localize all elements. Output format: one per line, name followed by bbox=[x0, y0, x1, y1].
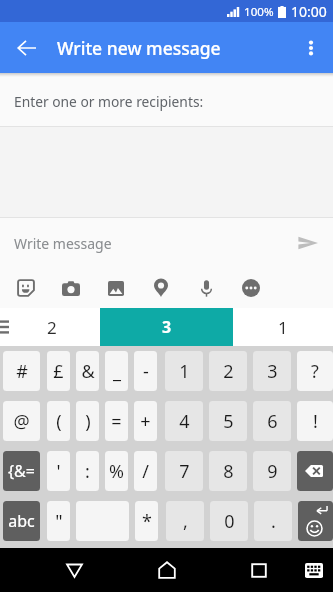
button[interactable]: Image bbox=[107, 279, 125, 297]
button[interactable]: Backspace bbox=[297, 451, 333, 491]
button[interactable]: 2 bbox=[209, 351, 247, 391]
staticText: 9 bbox=[267, 459, 278, 484]
button[interactable]: ) bbox=[76, 401, 99, 441]
staticText: {&= bbox=[8, 460, 35, 482]
staticText: ' bbox=[56, 459, 61, 484]
button[interactable]: ! bbox=[297, 401, 333, 441]
button[interactable]: = bbox=[105, 401, 128, 441]
button[interactable]: _ bbox=[105, 351, 128, 391]
staticText: = bbox=[111, 409, 122, 434]
staticText: * bbox=[142, 509, 152, 534]
staticText: & bbox=[81, 359, 95, 384]
staticText: " bbox=[55, 509, 63, 534]
button[interactable]: Location bbox=[152, 279, 170, 297]
button[interactable]: 4 bbox=[165, 401, 203, 441]
button[interactable]: 9 bbox=[253, 451, 291, 491]
staticText: 0 bbox=[224, 509, 235, 534]
staticText: 10:00 bbox=[291, 2, 327, 21]
button[interactable]: ? bbox=[297, 351, 333, 391]
staticText: ( bbox=[56, 409, 62, 434]
button[interactable]: More options bbox=[289, 26, 333, 70]
button[interactable]: % bbox=[105, 451, 128, 491]
staticText: 1 bbox=[278, 316, 288, 339]
staticText: 5 bbox=[223, 409, 234, 434]
button[interactable]: {&= bbox=[3, 451, 40, 491]
staticText: - bbox=[143, 359, 149, 384]
button[interactable]: Camera bbox=[62, 279, 80, 297]
staticText: / bbox=[142, 459, 149, 484]
button[interactable]: 6 bbox=[253, 401, 291, 441]
button[interactable]: 5 bbox=[209, 401, 247, 441]
staticText: ? bbox=[311, 359, 319, 384]
button[interactable]: ( bbox=[47, 401, 70, 441]
button[interactable]: Home bbox=[145, 548, 189, 592]
staticText: + bbox=[140, 409, 151, 434]
staticText: Write new message bbox=[57, 36, 221, 60]
button[interactable]: : bbox=[76, 451, 99, 491]
button[interactable]: / bbox=[134, 451, 157, 491]
staticText: 6 bbox=[267, 409, 278, 434]
staticText: £ bbox=[53, 359, 64, 384]
staticText: % bbox=[109, 459, 124, 484]
staticText: 100% bbox=[244, 4, 274, 20]
staticText: , bbox=[183, 509, 188, 534]
button[interactable]: £ bbox=[47, 351, 70, 391]
button[interactable]: , bbox=[166, 501, 204, 541]
button[interactable]: 0 bbox=[210, 501, 248, 541]
button[interactable]: Change keyboard bbox=[294, 550, 333, 590]
staticText: 7 bbox=[179, 459, 190, 484]
staticText: : bbox=[85, 459, 90, 484]
button[interactable]: 7 bbox=[165, 451, 203, 491]
staticText: . bbox=[271, 509, 276, 534]
staticText: ) bbox=[85, 409, 91, 434]
button[interactable]: Back bbox=[52, 548, 96, 592]
button[interactable]: 1 bbox=[233, 308, 333, 346]
staticText: 8 bbox=[223, 459, 234, 484]
button[interactable]: abc bbox=[3, 501, 40, 541]
staticText: _ bbox=[113, 359, 121, 384]
button[interactable]: 8 bbox=[209, 451, 247, 491]
button[interactable]: Voice message bbox=[197, 279, 215, 297]
button[interactable]: Back bbox=[0, 24, 48, 72]
button[interactable]: " bbox=[47, 501, 70, 541]
button[interactable]: ' bbox=[47, 451, 70, 491]
button[interactable]: & bbox=[76, 351, 99, 391]
button[interactable]: 3 bbox=[253, 351, 291, 391]
button[interactable]: . bbox=[254, 501, 292, 541]
staticText: 3 bbox=[267, 359, 278, 384]
button[interactable]: Send bbox=[285, 219, 333, 267]
staticText: ! bbox=[313, 409, 318, 434]
staticText: 2 bbox=[47, 316, 57, 339]
button[interactable]: 3 bbox=[100, 308, 233, 346]
button[interactable]: - bbox=[134, 351, 157, 391]
button[interactable]: * bbox=[135, 501, 158, 541]
staticText: 1 bbox=[179, 359, 190, 384]
staticText: 4 bbox=[179, 409, 190, 434]
staticText: @ bbox=[13, 409, 30, 434]
staticText: Write message bbox=[14, 234, 285, 253]
staticText: # bbox=[16, 359, 28, 384]
button[interactable]: 1 bbox=[165, 351, 203, 391]
staticText: abc bbox=[8, 510, 35, 532]
button[interactable]: # bbox=[3, 351, 40, 391]
button[interactable]: Enter bbox=[298, 501, 333, 541]
button[interactable]: 2 bbox=[0, 308, 100, 346]
button[interactable]: Recent apps bbox=[237, 548, 281, 592]
staticText: Enter one or more recipients: bbox=[14, 92, 204, 111]
staticText: 3 bbox=[162, 316, 172, 338]
staticText: 2 bbox=[223, 359, 234, 384]
button[interactable]: @ bbox=[3, 401, 40, 441]
button[interactable]: + bbox=[134, 401, 157, 441]
button[interactable]: Enter one or more recipients: bbox=[0, 77, 333, 126]
button[interactable]: Sticker bbox=[17, 279, 35, 297]
button[interactable]: More bbox=[242, 279, 260, 297]
